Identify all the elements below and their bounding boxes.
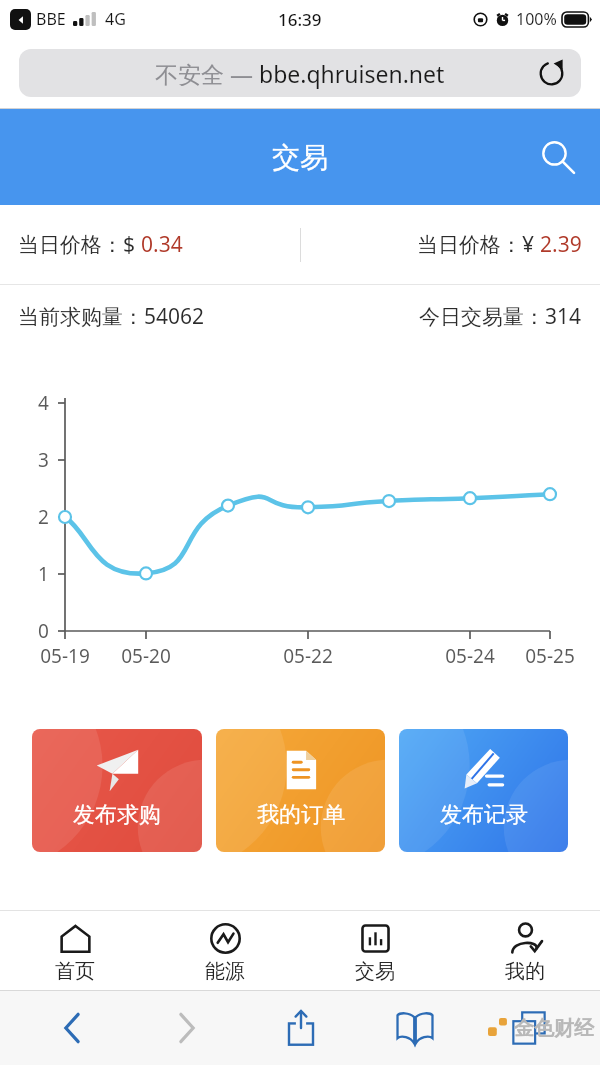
staticText: 2.39 bbox=[540, 230, 582, 259]
staticText: 发布记录 bbox=[440, 801, 528, 829]
staticText: 发布求购 bbox=[73, 801, 161, 829]
staticText: 05-22 bbox=[263, 643, 353, 669]
staticText: 0 bbox=[38, 618, 49, 644]
staticText: 05-20 bbox=[101, 643, 191, 669]
button[interactable]: Forward bbox=[129, 991, 244, 1065]
staticText: bbe.qhruisen.net bbox=[259, 58, 445, 89]
button[interactable]: 发布记录 bbox=[399, 729, 568, 852]
staticText: 4 bbox=[38, 390, 49, 416]
button[interactable]: 我的 bbox=[450, 911, 600, 990]
button[interactable]: 我的订单 bbox=[216, 729, 385, 852]
staticText: 05-19 bbox=[20, 643, 110, 669]
staticText: 当前求购量：54062 bbox=[18, 302, 205, 331]
staticText: 当日价格：$ bbox=[18, 230, 141, 259]
staticText: BBE bbox=[36, 8, 66, 30]
staticText: 交易 bbox=[355, 959, 395, 984]
staticText: 首页 bbox=[55, 959, 95, 984]
staticText: 我的 bbox=[505, 959, 545, 984]
button[interactable]: Back bbox=[14, 991, 129, 1065]
staticText: 今日交易量：314 bbox=[419, 302, 582, 331]
staticText: 3 bbox=[38, 447, 49, 473]
button[interactable]: 首页 bbox=[0, 911, 150, 990]
staticText: 我的订单 bbox=[257, 801, 345, 829]
staticText: 05-24 bbox=[425, 643, 515, 669]
staticText: 交易 bbox=[272, 140, 328, 175]
staticText: 100% bbox=[516, 8, 557, 30]
button[interactable]: Bookmarks bbox=[358, 991, 472, 1065]
staticText: 能源 bbox=[205, 959, 245, 984]
staticText: 0.34 bbox=[141, 230, 183, 259]
staticText: 不安全 — bbox=[155, 58, 259, 89]
staticText: 金色财经 bbox=[514, 1016, 594, 1041]
staticText: 4G bbox=[105, 8, 126, 30]
staticText: 2 bbox=[38, 504, 49, 530]
button[interactable]: Tabs bbox=[472, 991, 586, 1065]
button[interactable]: Share bbox=[244, 991, 358, 1065]
button[interactable]: 能源 bbox=[150, 911, 300, 990]
button[interactable]: 交易 bbox=[300, 911, 450, 990]
button[interactable]: 发布求购 bbox=[32, 729, 202, 852]
button[interactable]: Reload bbox=[531, 53, 571, 93]
staticText: 05-25 bbox=[505, 643, 595, 669]
staticText: 16:39 bbox=[278, 8, 322, 31]
button[interactable]: 不安全 — bbox=[19, 49, 581, 97]
staticText: 1 bbox=[38, 561, 49, 587]
staticText: 当日价格：¥ bbox=[417, 230, 540, 259]
button[interactable]: Search bbox=[533, 133, 581, 181]
